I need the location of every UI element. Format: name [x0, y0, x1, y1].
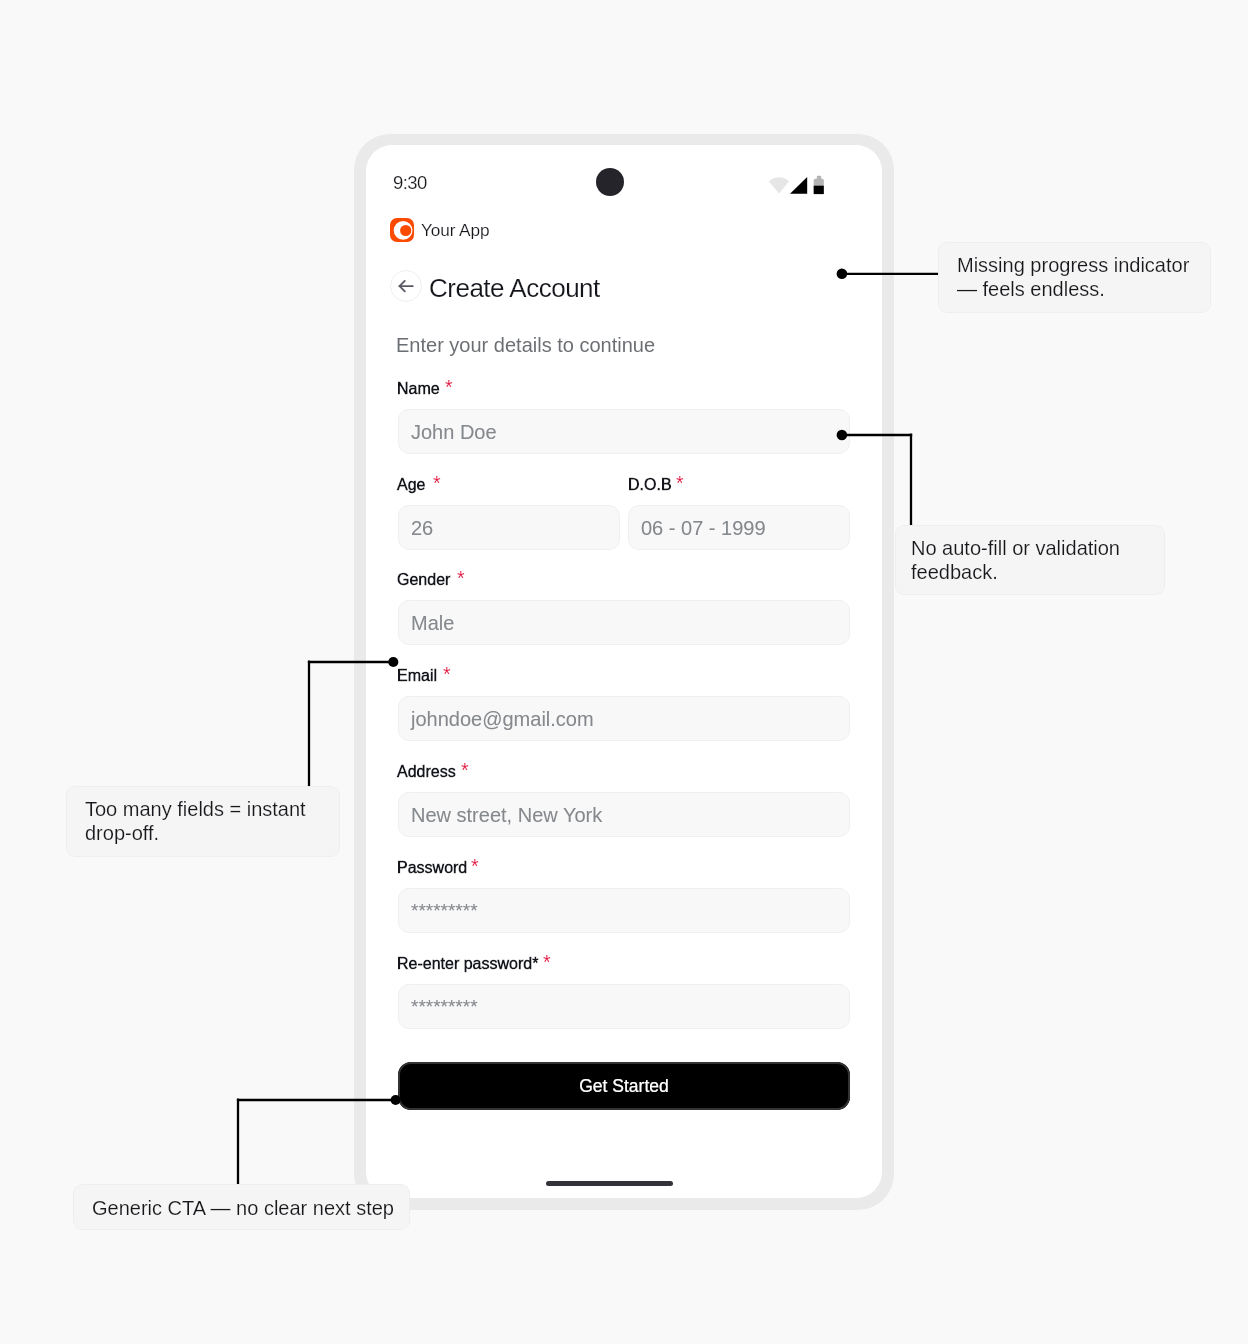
staticText: Your App: [421, 220, 490, 239]
staticText: Email: [397, 667, 438, 685]
staticText: *: [445, 376, 453, 398]
staticText: Gender: [397, 571, 451, 589]
staticText: *: [457, 567, 465, 589]
staticText: *: [433, 472, 441, 494]
button[interactable]: John Doe: [398, 409, 850, 454]
staticText: *********: [411, 996, 478, 1017]
staticText: Age: [397, 476, 426, 494]
staticText: No auto-fill or validation feedback.: [911, 537, 1120, 583]
staticText: Get Started: [579, 1076, 669, 1096]
staticText: Name: [397, 380, 440, 398]
staticText: 26: [411, 517, 434, 539]
button[interactable]: johndoe@gmail.com: [398, 696, 850, 741]
staticText: johndoe@gmail.com: [411, 708, 594, 730]
button[interactable]: 26: [398, 505, 620, 550]
staticText: Enter your details to continue: [396, 334, 656, 356]
staticText: Create Account: [429, 273, 600, 302]
staticText: *: [471, 855, 479, 877]
staticText: Password: [397, 859, 468, 877]
staticText: Address: [397, 763, 456, 781]
button[interactable]: 06 - 07 - 1999: [628, 505, 850, 550]
staticText: 9:30: [393, 172, 427, 193]
staticText: Re-enter password*: [397, 955, 539, 973]
staticText: *: [543, 951, 551, 973]
button[interactable]: Back: [390, 270, 422, 302]
button[interactable]: *********: [398, 984, 850, 1029]
staticText: Missing progress indicator — feels endle…: [957, 254, 1190, 300]
staticText: John Doe: [411, 421, 497, 443]
staticText: *: [461, 759, 469, 781]
staticText: D.O.B: [628, 476, 672, 494]
staticText: Too many fields = instant drop-off.: [85, 798, 306, 844]
staticText: New street, New York: [411, 804, 603, 826]
button[interactable]: *********: [398, 888, 850, 933]
staticText: Male: [411, 612, 455, 634]
button[interactable]: Get Started: [398, 1062, 850, 1110]
staticText: Generic CTA — no clear next step: [92, 1197, 394, 1219]
staticText: *: [676, 472, 684, 494]
staticText: 06 - 07 - 1999: [641, 517, 766, 539]
staticText: *: [443, 663, 451, 685]
staticText: *********: [411, 900, 478, 921]
button[interactable]: New street, New York: [398, 792, 850, 837]
button[interactable]: Male: [398, 600, 850, 645]
